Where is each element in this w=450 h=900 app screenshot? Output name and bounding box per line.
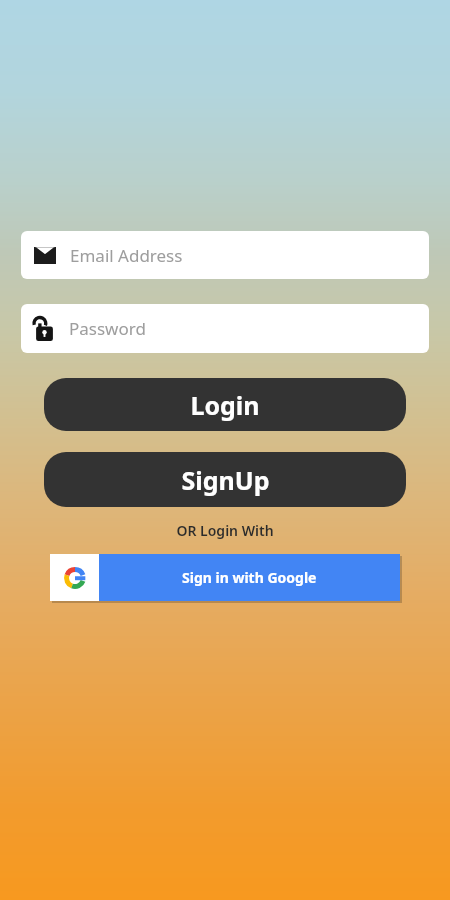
button[interactable]: Sign in with Google — [50, 554, 400, 601]
button[interactable]: Login — [44, 378, 406, 431]
button[interactable]: Password — [21, 304, 429, 353]
staticText: SignUp — [181, 463, 270, 497]
staticText: Email Address — [70, 244, 183, 267]
staticText: Sign in with Google — [182, 568, 317, 587]
other: Password — [34, 316, 55, 341]
staticText: Password — [69, 317, 146, 340]
button[interactable]: SignUp — [44, 452, 406, 507]
staticText: OR Login With — [176, 521, 274, 540]
staticText: Login — [190, 388, 260, 422]
other: Email — [34, 247, 56, 264]
button[interactable]: Email — [21, 231, 429, 279]
